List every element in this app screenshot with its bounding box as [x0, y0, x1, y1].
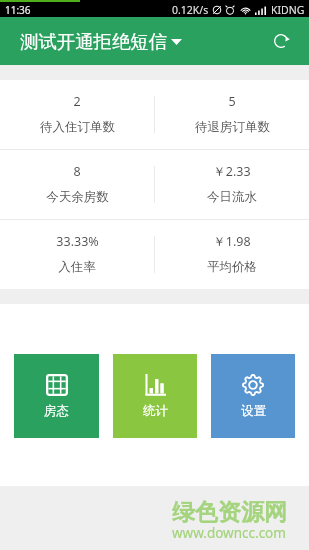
staticText: 今天余房数 [46, 189, 109, 205]
button[interactable]: Refresh [267, 27, 295, 55]
button[interactable]: 统计 [113, 354, 197, 438]
button[interactable]: 设置 [211, 354, 295, 438]
button[interactable]: ￥2.33 [155, 150, 309, 219]
staticText: 统计 [143, 403, 168, 419]
staticText: 今日流水 [207, 189, 257, 205]
button[interactable]: 5 [155, 80, 309, 149]
button[interactable]: 房态 [14, 354, 99, 438]
staticText: www.downcc.com [172, 524, 286, 542]
staticText: 平均价格 [207, 259, 257, 275]
staticText: 设置 [241, 403, 266, 419]
staticText: ￥1.98 [213, 233, 251, 250]
staticText: ￥2.33 [213, 163, 251, 180]
staticText: 11:36 [5, 3, 31, 17]
button[interactable]: 8 [0, 150, 154, 219]
button[interactable]: ￥1.98 [155, 220, 309, 289]
staticText: 房态 [44, 403, 69, 419]
staticText: 测试开通拒绝短信 [20, 30, 168, 53]
staticText: 33.33% [56, 233, 99, 250]
button[interactable]: 2 [0, 80, 154, 149]
staticText: 入住率 [58, 259, 96, 275]
staticText: KIDNG [271, 3, 305, 17]
staticText: 待入住订单数 [40, 119, 115, 135]
staticText: 绿色资源网 [172, 498, 287, 527]
button[interactable]: 测试开通拒绝短信 [0, 22, 192, 61]
staticText: 0.12K/s [172, 3, 209, 17]
staticText: 待退房订单数 [195, 119, 270, 135]
staticText: 8 [73, 163, 81, 180]
button[interactable]: 33.33% [0, 220, 154, 289]
staticText: 2 [73, 93, 81, 110]
staticText: 5 [228, 93, 236, 110]
